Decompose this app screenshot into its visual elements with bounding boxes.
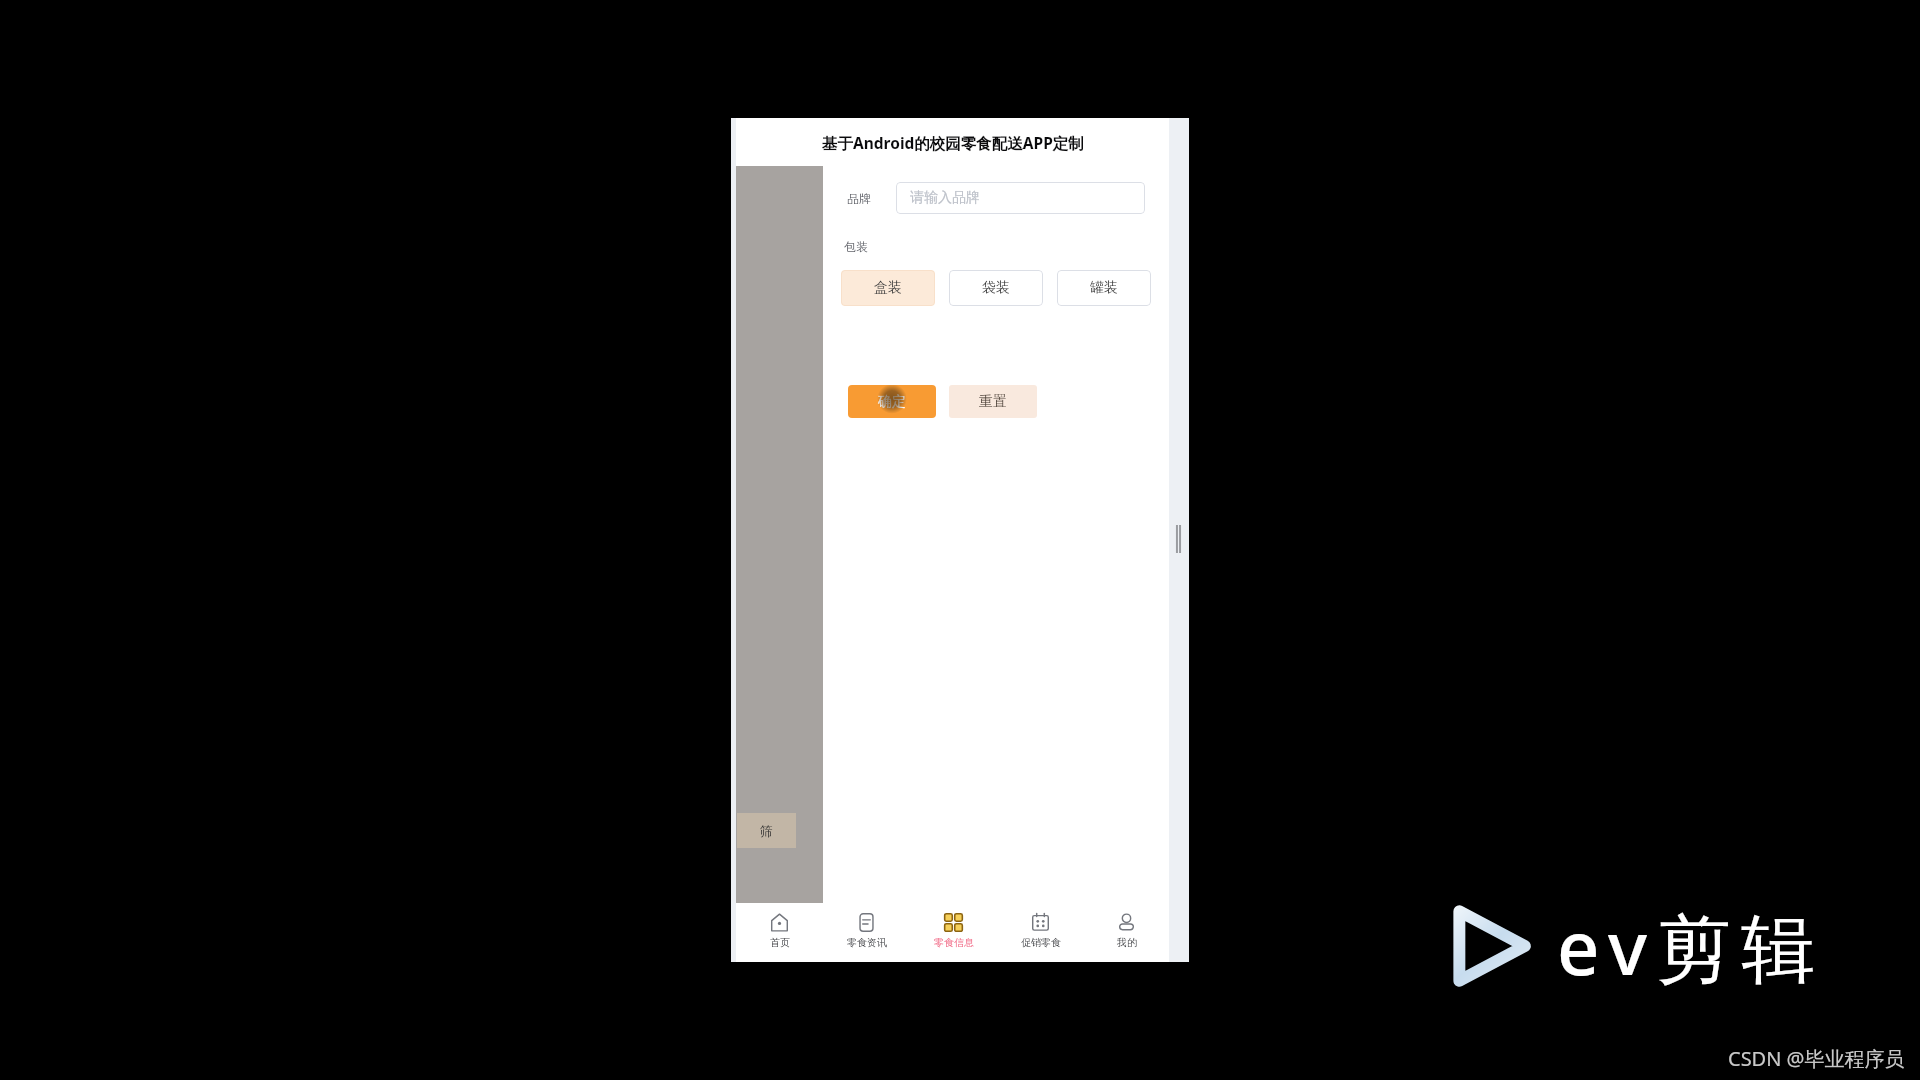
button[interactable]: Filter	[737, 813, 796, 848]
button[interactable]: 零食信息	[910, 903, 997, 955]
staticText: 确定	[878, 393, 906, 411]
staticText: CSDN @毕业程序员	[1728, 1045, 1905, 1072]
staticText: 我的	[1117, 936, 1137, 949]
staticText: 品牌	[847, 191, 871, 206]
button[interactable]: 我的	[1084, 903, 1169, 955]
button[interactable]: 盒装	[841, 270, 935, 306]
button[interactable]: Resize window	[1175, 525, 1182, 553]
button[interactable]	[736, 166, 823, 903]
staticText: 促销零食	[1021, 936, 1061, 949]
staticText: 包装	[844, 239, 868, 254]
staticText: 罐装	[1090, 279, 1118, 297]
staticText: 袋装	[982, 279, 1010, 297]
button[interactable]: 零食资讯	[823, 903, 910, 955]
staticText: 首页	[770, 936, 790, 949]
button[interactable]: 首页	[736, 903, 823, 955]
staticText: 重置	[979, 393, 1007, 411]
staticText: 零食资讯	[847, 936, 887, 949]
staticText: ev剪辑	[1557, 896, 1825, 997]
staticText: 零食信息	[934, 936, 974, 949]
button[interactable]: 请输入品牌	[896, 182, 1145, 214]
button[interactable]: 罐装	[1057, 270, 1151, 306]
button[interactable]: 袋装	[949, 270, 1043, 306]
button[interactable]: 重置	[949, 385, 1037, 418]
button[interactable]: 确定	[848, 385, 936, 418]
staticText: 盒装	[874, 279, 902, 297]
staticText: 筛	[760, 823, 773, 839]
staticText: 基于Android的校园零食配送APP定制	[822, 132, 1084, 153]
button[interactable]: 促销零食	[997, 903, 1084, 955]
staticText: 请输入品牌	[910, 189, 980, 207]
other: EV editor logo	[1437, 894, 1541, 998]
